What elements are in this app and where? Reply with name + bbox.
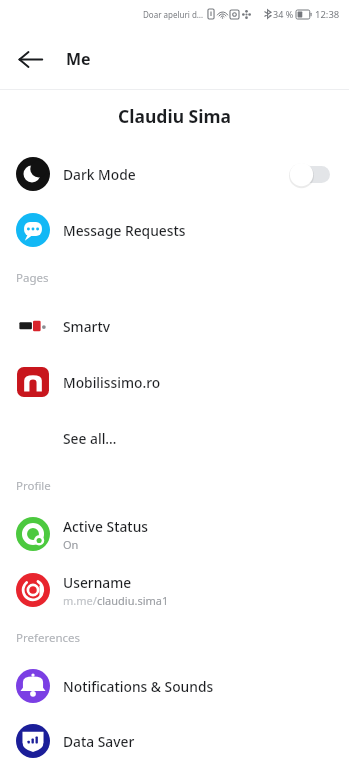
staticText: m.me/ <box>63 593 97 608</box>
staticText: Data Saver <box>63 732 135 751</box>
button[interactable]: Active Status <box>0 506 349 562</box>
staticText: Message Requests <box>63 221 186 240</box>
staticText: Smartv <box>63 317 110 336</box>
button[interactable]: Message Requests <box>0 202 349 258</box>
button[interactable]: Mobilissimo.ro <box>0 354 349 410</box>
button[interactable]: Data Saver <box>0 714 349 768</box>
button[interactable]: Notifications & Sounds <box>0 658 349 714</box>
staticText: 34 % <box>273 8 294 20</box>
button[interactable]: See all… <box>0 410 349 466</box>
staticText: Username <box>63 573 132 592</box>
staticText: See all… <box>63 429 117 448</box>
staticText: Preferences <box>16 630 81 646</box>
button[interactable]: Back <box>8 37 52 81</box>
staticText: Mobilissimo.ro <box>63 373 161 392</box>
staticText: Profile <box>16 478 51 494</box>
staticText: claudiu.sima1 <box>97 593 169 608</box>
staticText: 12:38 <box>315 8 340 21</box>
staticText: Me <box>66 48 91 70</box>
staticText: Claudiu Sima <box>118 104 231 128</box>
staticText: Active Status <box>63 517 149 536</box>
button[interactable]: Smartv <box>0 298 349 354</box>
staticText: Pages <box>16 270 49 286</box>
staticText: Dark Mode <box>63 165 136 184</box>
button[interactable]: Dark Mode <box>0 146 349 202</box>
staticText: Doar apeluri d… <box>143 9 204 20</box>
button[interactable]: Dark Mode toggle <box>289 160 335 188</box>
staticText: Notifications & Sounds <box>63 677 214 696</box>
button[interactable]: Username <box>0 562 349 618</box>
staticText: On <box>63 537 79 552</box>
